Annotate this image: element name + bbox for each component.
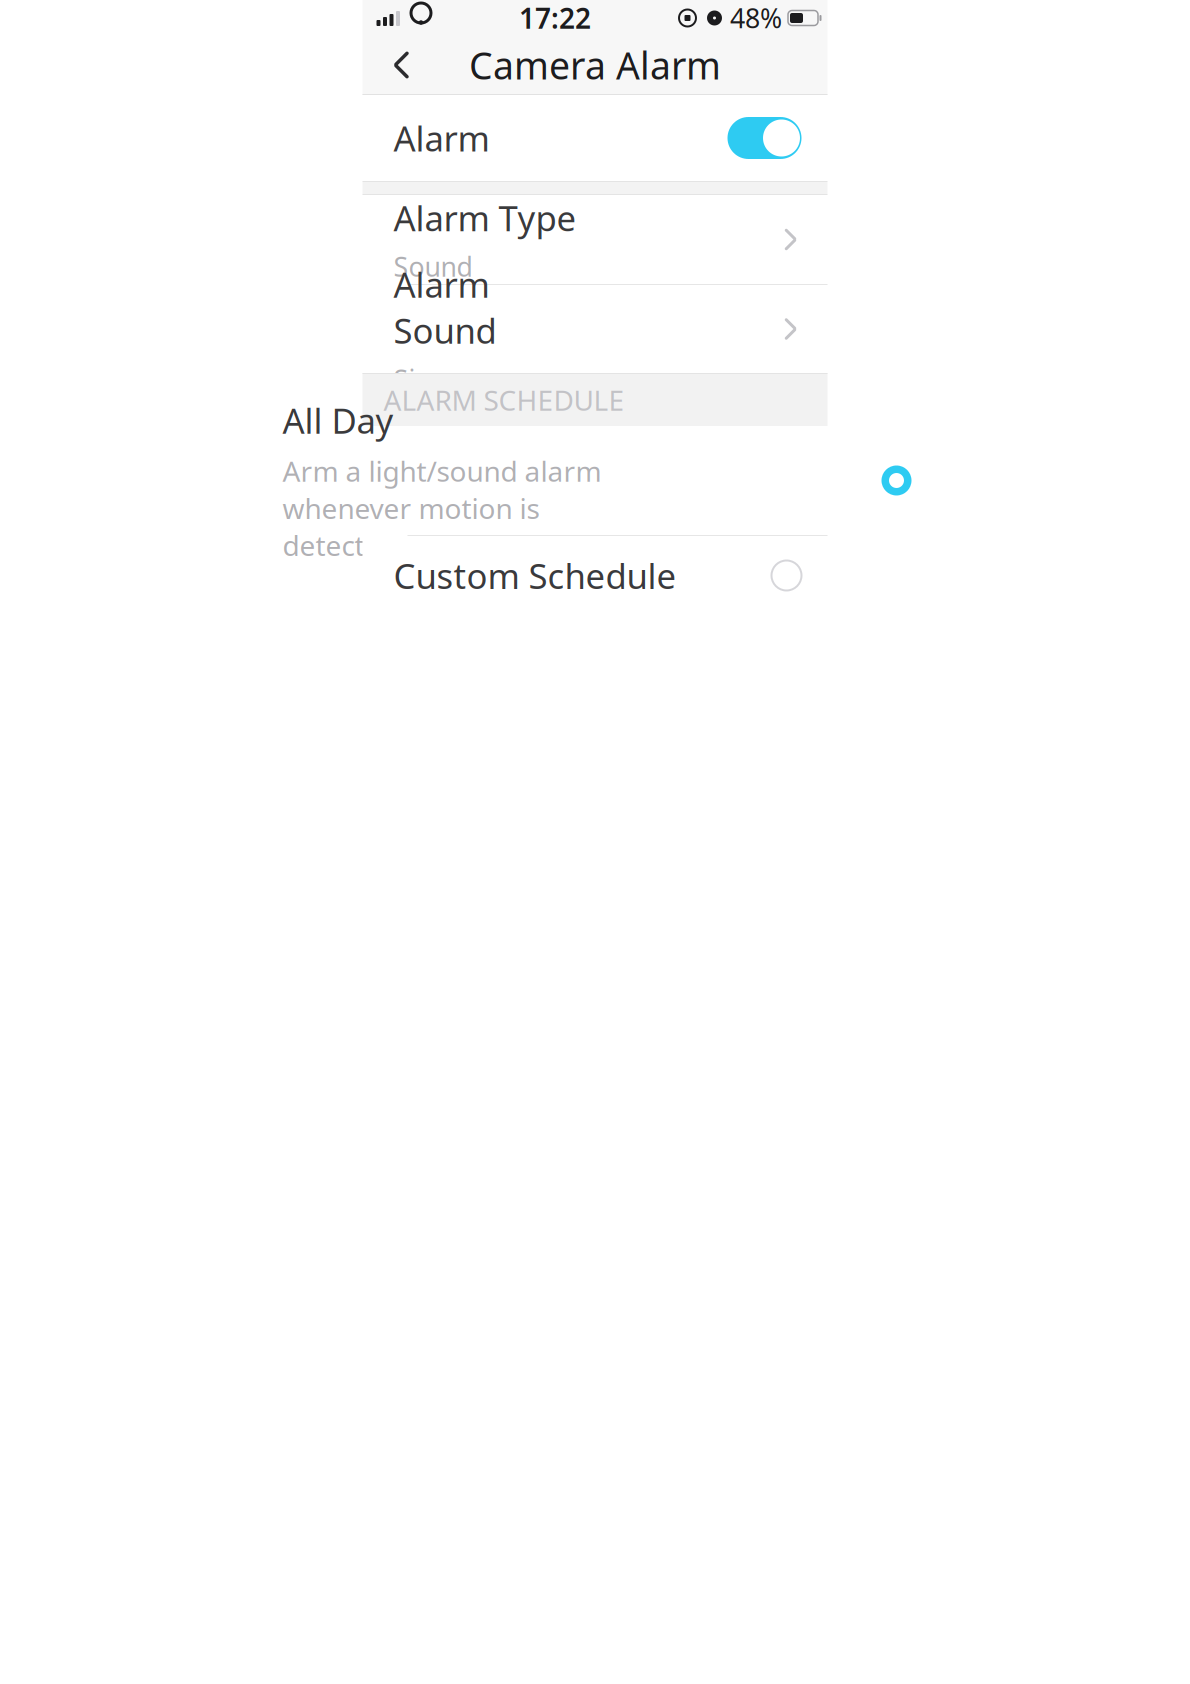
staticText: Alarm bbox=[393, 115, 489, 161]
button[interactable]: Alarm Sound bbox=[362, 284, 827, 373]
button[interactable]: Back bbox=[370, 38, 432, 92]
staticText: Sound bbox=[393, 249, 472, 284]
button[interactable]: Custom Schedule bbox=[362, 535, 827, 615]
button[interactable]: Alarm bbox=[362, 95, 827, 181]
button[interactable]: All Day bbox=[288, 426, 901, 535]
staticText: Arm a light/sound alarm whenever motion … bbox=[282, 452, 601, 564]
staticText: 17:22 bbox=[519, 0, 591, 37]
staticText: Custom Schedule bbox=[393, 552, 676, 598]
staticText: 48% bbox=[730, 0, 782, 36]
staticText: Alarm Type bbox=[393, 195, 576, 241]
staticText: ALARM SCHEDULE bbox=[383, 381, 624, 419]
staticText: Alarm Sound bbox=[393, 261, 496, 353]
button[interactable]: Alarm Type bbox=[362, 195, 827, 284]
staticText: All Day bbox=[282, 397, 393, 443]
staticText: Siren bbox=[393, 361, 456, 397]
staticText: Camera Alarm bbox=[469, 40, 721, 90]
